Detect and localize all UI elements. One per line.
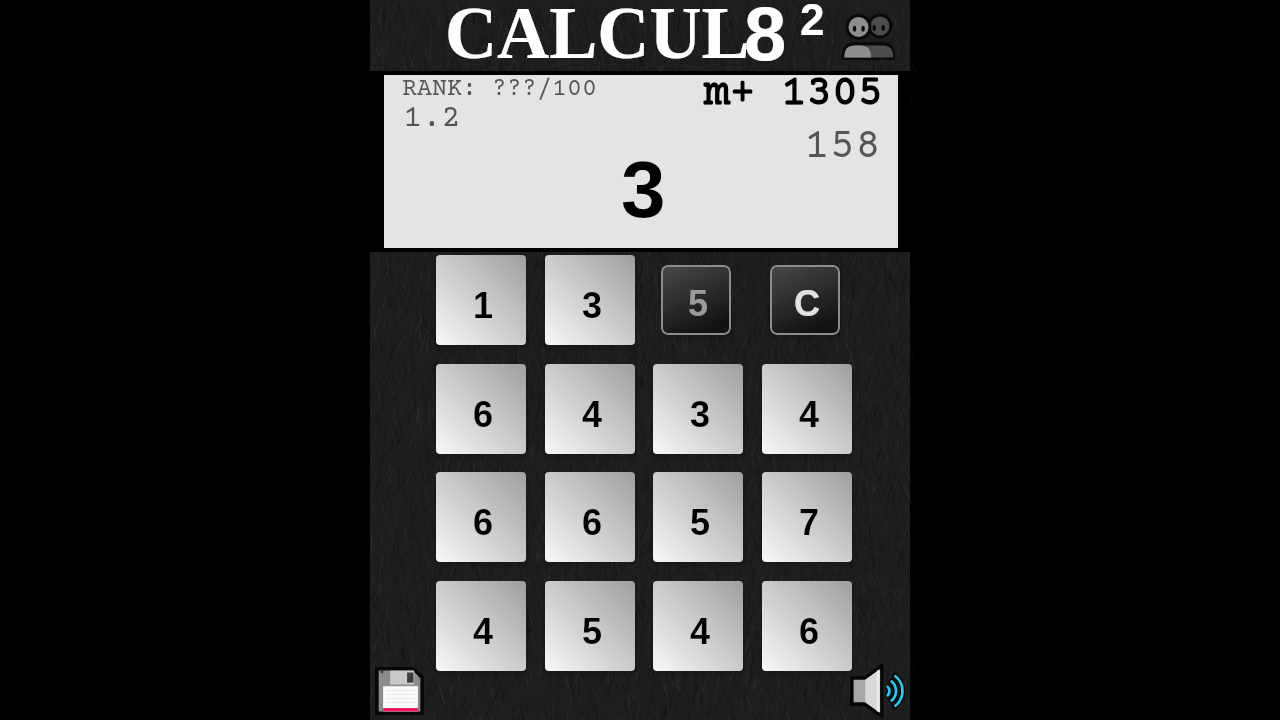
button[interactable]: 7 bbox=[762, 472, 852, 562]
button[interactable]: 1 bbox=[436, 255, 526, 345]
staticText: 5 bbox=[582, 611, 603, 651]
staticText: 158 bbox=[804, 122, 881, 173]
staticText: 4 bbox=[690, 611, 711, 651]
staticText: 5 bbox=[688, 283, 709, 323]
staticText: 7 bbox=[799, 502, 820, 542]
button[interactable]: 6 bbox=[436, 472, 526, 562]
button[interactable]: 3 bbox=[653, 364, 743, 454]
button[interactable]: 4 bbox=[653, 581, 743, 671]
staticText: 1.2 bbox=[403, 101, 461, 137]
staticText: 5 bbox=[690, 502, 711, 542]
staticText: 4 bbox=[799, 394, 820, 434]
button[interactable]: 5 bbox=[545, 581, 635, 671]
button[interactable]: 4 bbox=[762, 364, 852, 454]
staticText: 6 bbox=[582, 502, 603, 542]
staticText: 3 bbox=[582, 285, 603, 325]
button[interactable]: 4 bbox=[545, 364, 635, 454]
button[interactable]: 4 bbox=[436, 581, 526, 671]
staticText: RANK: ???/100 bbox=[402, 75, 597, 103]
button[interactable]: 5 bbox=[661, 265, 731, 335]
staticText: 8 bbox=[744, 0, 787, 76]
staticText: 4 bbox=[582, 394, 603, 434]
button[interactable]: Sound bbox=[849, 667, 903, 715]
staticText: m+ 1305 bbox=[704, 69, 883, 120]
staticText: C bbox=[794, 283, 820, 323]
staticText: CALCUL bbox=[445, 0, 750, 74]
button[interactable]: 6 bbox=[762, 581, 852, 671]
button[interactable]: 6 bbox=[545, 472, 635, 562]
button[interactable]: Save bbox=[375, 667, 424, 715]
button[interactable]: 3 bbox=[545, 255, 635, 345]
staticText: 6 bbox=[473, 502, 494, 542]
staticText: 1 bbox=[473, 285, 494, 325]
button[interactable]: C bbox=[770, 265, 840, 335]
button[interactable]: Multiplayer bbox=[842, 11, 895, 60]
staticText: 2 bbox=[800, 0, 825, 44]
staticText: 6 bbox=[473, 394, 494, 434]
button[interactable]: 5 bbox=[653, 472, 743, 562]
staticText: 3 bbox=[690, 394, 711, 434]
staticText: 4 bbox=[473, 611, 494, 651]
staticText: 3 bbox=[621, 145, 666, 234]
staticText: 6 bbox=[799, 611, 820, 651]
button[interactable]: 6 bbox=[436, 364, 526, 454]
